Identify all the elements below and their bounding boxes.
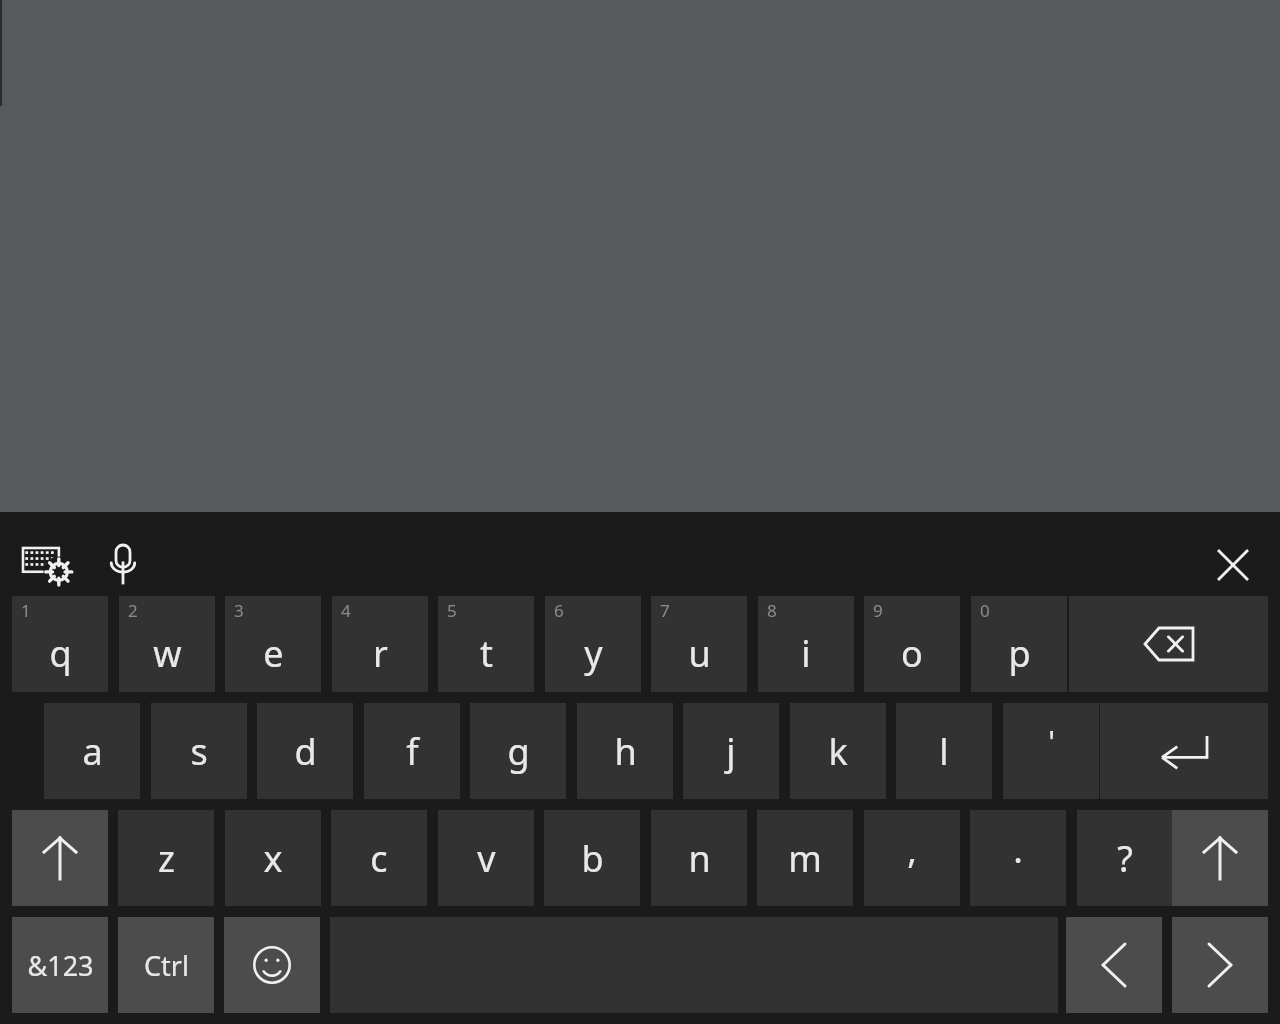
staticText: l (939, 727, 949, 776)
staticText: c (370, 834, 388, 883)
button[interactable]: Ctrl (118, 917, 214, 1013)
staticText: g (507, 727, 530, 776)
staticText: p (1008, 629, 1031, 678)
staticText: n (688, 834, 711, 883)
staticText: a (82, 727, 103, 776)
staticText: v (477, 834, 496, 883)
button[interactable]: 5 (438, 596, 534, 692)
staticText: x (263, 834, 283, 883)
button[interactable]: 3 (225, 596, 321, 692)
staticText: ? (1117, 834, 1133, 883)
staticText: 5 (447, 599, 457, 622)
button[interactable]: Shift (1172, 810, 1268, 906)
staticText: d (294, 727, 317, 776)
button[interactable]: 1 (12, 596, 108, 692)
button[interactable]: 6 (545, 596, 641, 692)
staticText: m (788, 834, 822, 883)
staticText: 9 (873, 599, 883, 622)
button[interactable]: &123 (12, 917, 108, 1013)
staticText: f (406, 727, 419, 776)
staticText: q (49, 629, 72, 678)
button[interactable]: h (577, 703, 673, 799)
button[interactable]: k (790, 703, 886, 799)
staticText: 4 (341, 599, 351, 622)
staticText: , (907, 825, 917, 874)
button[interactable]: a (44, 703, 140, 799)
button[interactable]: Move cursor right (1172, 917, 1268, 1013)
button[interactable]: z (118, 810, 214, 906)
button[interactable]: n (651, 810, 747, 906)
staticText: y (584, 629, 603, 678)
button[interactable]: v (438, 810, 534, 906)
button[interactable]: m (757, 810, 853, 906)
button[interactable]: Move cursor left (1066, 917, 1162, 1013)
button[interactable]: Voice input (97, 538, 149, 590)
button[interactable]: Backspace (1069, 596, 1268, 692)
button[interactable]: Keyboard settings (16, 538, 74, 590)
button[interactable]: , (864, 810, 960, 906)
button[interactable]: 8 (758, 596, 854, 692)
button[interactable]: b (544, 810, 640, 906)
staticText: i (801, 629, 811, 678)
staticText: r (373, 629, 388, 678)
button[interactable]: 0 (971, 596, 1067, 692)
staticText: 7 (660, 599, 670, 622)
staticText: j (726, 727, 736, 776)
staticText: s (190, 727, 208, 776)
button[interactable]: Shift (12, 810, 108, 906)
staticText: Ctrl (144, 947, 189, 984)
staticText: 6 (554, 599, 564, 622)
button[interactable]: 9 (864, 596, 960, 692)
staticText: . (1013, 825, 1023, 874)
staticText: ' (1048, 721, 1055, 762)
staticText: h (614, 727, 637, 776)
button[interactable]: 4 (332, 596, 428, 692)
staticText: k (828, 727, 848, 776)
staticText: 0 (980, 599, 990, 622)
button[interactable]: Enter (1100, 703, 1268, 799)
button[interactable]: Emoji (224, 917, 320, 1013)
staticText: w (153, 629, 182, 678)
staticText: 8 (767, 599, 777, 622)
staticText: b (581, 834, 604, 883)
staticText: e (263, 629, 284, 678)
button[interactable]: f (364, 703, 460, 799)
button[interactable]: l (896, 703, 992, 799)
staticText: 2 (128, 599, 138, 622)
button[interactable]: x (225, 810, 321, 906)
staticText: u (688, 629, 711, 678)
staticText: 1 (21, 599, 31, 622)
button[interactable]: ' (1003, 703, 1099, 799)
button[interactable]: 7 (651, 596, 747, 692)
button[interactable]: 2 (119, 596, 215, 692)
button[interactable]: Close keyboard (1207, 539, 1259, 591)
staticText: &123 (27, 947, 94, 984)
staticText: t (480, 629, 493, 678)
staticText: o (901, 629, 923, 678)
button[interactable]: j (683, 703, 779, 799)
button[interactable]: c (331, 810, 427, 906)
button[interactable]: ? (1077, 810, 1173, 906)
button[interactable]: d (257, 703, 353, 799)
staticText: 3 (234, 599, 244, 622)
button[interactable]: g (470, 703, 566, 799)
button[interactable]: . (970, 810, 1066, 906)
staticText: z (158, 834, 175, 883)
button[interactable]: s (151, 703, 247, 799)
